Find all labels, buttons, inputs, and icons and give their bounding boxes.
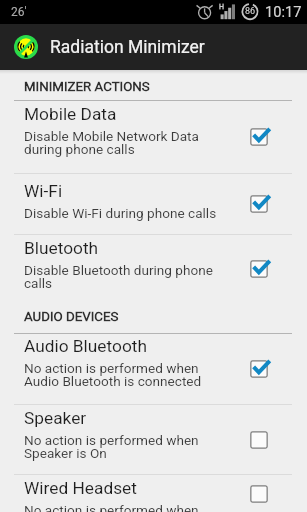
- staticText: Disable Wi-Fi during phone calls: [24, 205, 217, 221]
- staticText: Audio Bluetooth: [24, 336, 147, 356]
- staticText: Bluetooth: [24, 238, 99, 258]
- button[interactable]: Toggle: [246, 427, 272, 453]
- button[interactable]: Toggle: [246, 356, 272, 382]
- button[interactable]: Toggle: [246, 481, 272, 507]
- staticText: Speaker: [24, 408, 87, 428]
- button[interactable]: Toggle: [246, 124, 272, 150]
- staticText: Disable Bluetooth during phone calls: [24, 262, 213, 291]
- staticText: Mobile Data: [24, 104, 117, 124]
- staticText: Radiation Minimizer: [50, 37, 205, 58]
- staticText: 86: [245, 6, 256, 17]
- staticText: No action is performed when Wired Headse…: [24, 502, 199, 512]
- button[interactable]: Wi-Fi: [0, 174, 307, 234]
- button[interactable]: Toggle: [246, 256, 272, 282]
- staticText: 26': [11, 5, 27, 19]
- staticText: No action is performed when Speaker is O…: [24, 432, 199, 461]
- staticText: MINIMIZER ACTIONS: [24, 79, 150, 95]
- staticText: Disable Mobile Network Data during phone…: [24, 128, 199, 157]
- staticText: No action is performed when Audio Blueto…: [24, 360, 202, 389]
- button[interactable]: Audio Bluetooth: [0, 334, 307, 404]
- staticText: Wi-Fi: [24, 181, 63, 201]
- button[interactable]: Speaker: [0, 405, 307, 474]
- staticText: AUDIO DEVICES: [24, 309, 119, 325]
- button[interactable]: Wired Headset: [0, 475, 307, 512]
- button[interactable]: Bluetooth: [0, 235, 307, 302]
- staticText: H: [219, 3, 224, 11]
- staticText: Wired Headset: [24, 478, 137, 498]
- button[interactable]: Mobile Data: [0, 101, 307, 173]
- staticText: 10:17: [265, 3, 302, 20]
- button[interactable]: Toggle: [246, 191, 272, 217]
